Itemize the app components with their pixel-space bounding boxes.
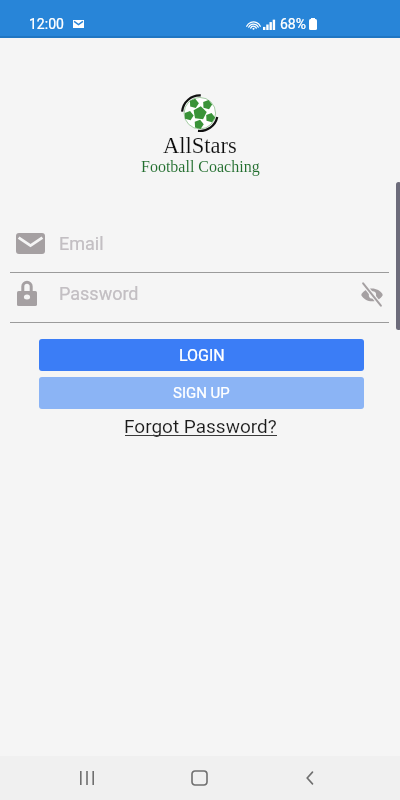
staticText: LOGIN xyxy=(179,346,225,365)
staticText: Email xyxy=(59,233,104,254)
button[interactable]: Recent apps xyxy=(55,763,119,793)
staticText: 68% xyxy=(280,16,306,32)
staticText: Forgot Password? xyxy=(124,415,277,437)
button[interactable]: Forgot Password? xyxy=(124,415,277,437)
button[interactable]: Home xyxy=(167,763,231,793)
button[interactable]: Show password xyxy=(355,277,389,311)
staticText: SIGN UP xyxy=(173,384,230,402)
button[interactable]: SIGN UP xyxy=(39,377,364,409)
button[interactable]: Email xyxy=(16,220,389,266)
staticText: 12:00 xyxy=(29,16,64,32)
button[interactable]: LOGIN xyxy=(39,339,364,371)
staticText: Football Coaching xyxy=(141,158,260,176)
staticText: Password xyxy=(59,283,139,304)
button[interactable]: Back xyxy=(278,763,342,793)
staticText: AllStars xyxy=(163,133,237,158)
